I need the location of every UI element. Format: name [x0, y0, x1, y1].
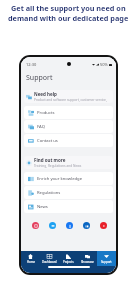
staticText: Contact us [37, 138, 58, 144]
button[interactable]: Projects [59, 251, 78, 266]
staticText: Dashboard [42, 260, 57, 264]
button[interactable]: FAQ [24, 120, 113, 133]
staticText: Get all the support you need on [11, 3, 126, 13]
staticText: News [37, 204, 48, 210]
staticText: Find out more [34, 157, 66, 163]
button[interactable]: LinkedIn [83, 222, 90, 229]
staticText: Training, Regulations and News [34, 164, 82, 168]
staticText: Showcase [81, 260, 94, 264]
button[interactable]: Support [97, 251, 116, 266]
staticText: FAQ [37, 124, 45, 130]
staticText: 50% [100, 62, 108, 67]
staticText: Need help [34, 91, 57, 97]
button[interactable]: News [24, 200, 113, 213]
staticText: Regulations [37, 190, 61, 196]
staticText: Enrich your knowledge [37, 176, 83, 182]
button[interactable]: Enrich your knowledge [24, 172, 113, 185]
staticText: demand with our dedicated page [8, 13, 129, 23]
button[interactable]: Showcase [78, 251, 97, 266]
staticText: Product and software support, customer s… [34, 98, 107, 102]
button[interactable]: YouTube [100, 222, 107, 229]
button[interactable]: Regulations [24, 186, 113, 199]
staticText: Support [101, 260, 112, 264]
staticText: Projects [63, 260, 74, 264]
button[interactable]: Contact us [24, 134, 113, 147]
staticText: 12:30 [26, 62, 37, 67]
staticText: Products [37, 110, 55, 116]
button[interactable]: Dashboard [40, 251, 59, 266]
staticText: Support [26, 73, 53, 83]
button[interactable]: Twitter [49, 222, 56, 229]
button[interactable]: Home [21, 251, 40, 266]
button[interactable]: Products [24, 106, 113, 119]
button[interactable]: Facebook [66, 222, 73, 229]
staticText: Home [27, 260, 35, 264]
button[interactable]: Instagram [32, 222, 39, 229]
